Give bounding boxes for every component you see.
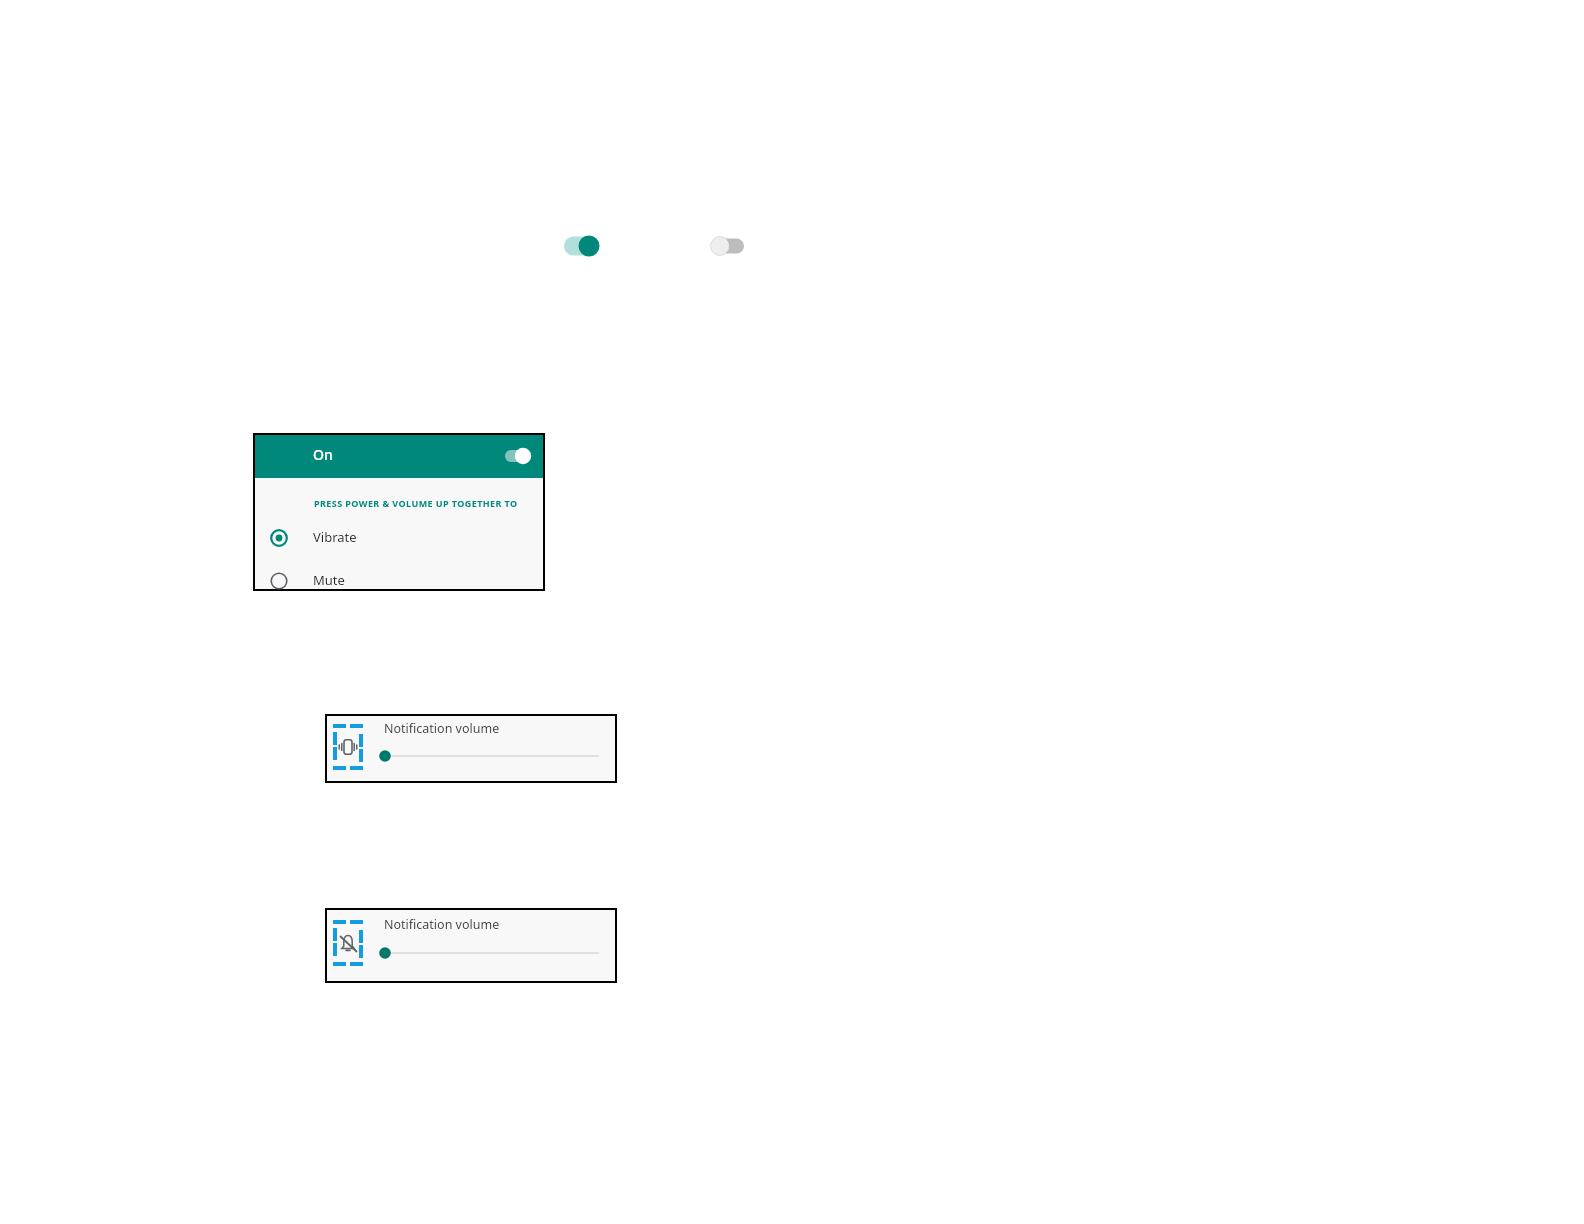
button[interactable]: Vibrate [255,524,543,552]
staticText: Vibrate [313,528,357,546]
staticText: Mute [313,571,345,589]
button[interactable]: Switch off [700,228,748,262]
button[interactable]: Switch on [556,228,604,262]
button[interactable]: Notification volume slider [373,943,613,963]
staticText: On [313,445,333,464]
staticText: PRESS POWER & VOLUME UP TOGETHER TO [314,497,518,509]
button[interactable]: Notification volume slider [373,746,613,766]
staticText: Notification volume [384,916,500,933]
staticText: Notification volume [384,720,500,737]
button[interactable]: Mute [255,567,543,595]
button[interactable]: Vibrate [333,724,363,770]
button[interactable]: Mute [333,920,363,966]
button[interactable]: On [255,435,543,478]
